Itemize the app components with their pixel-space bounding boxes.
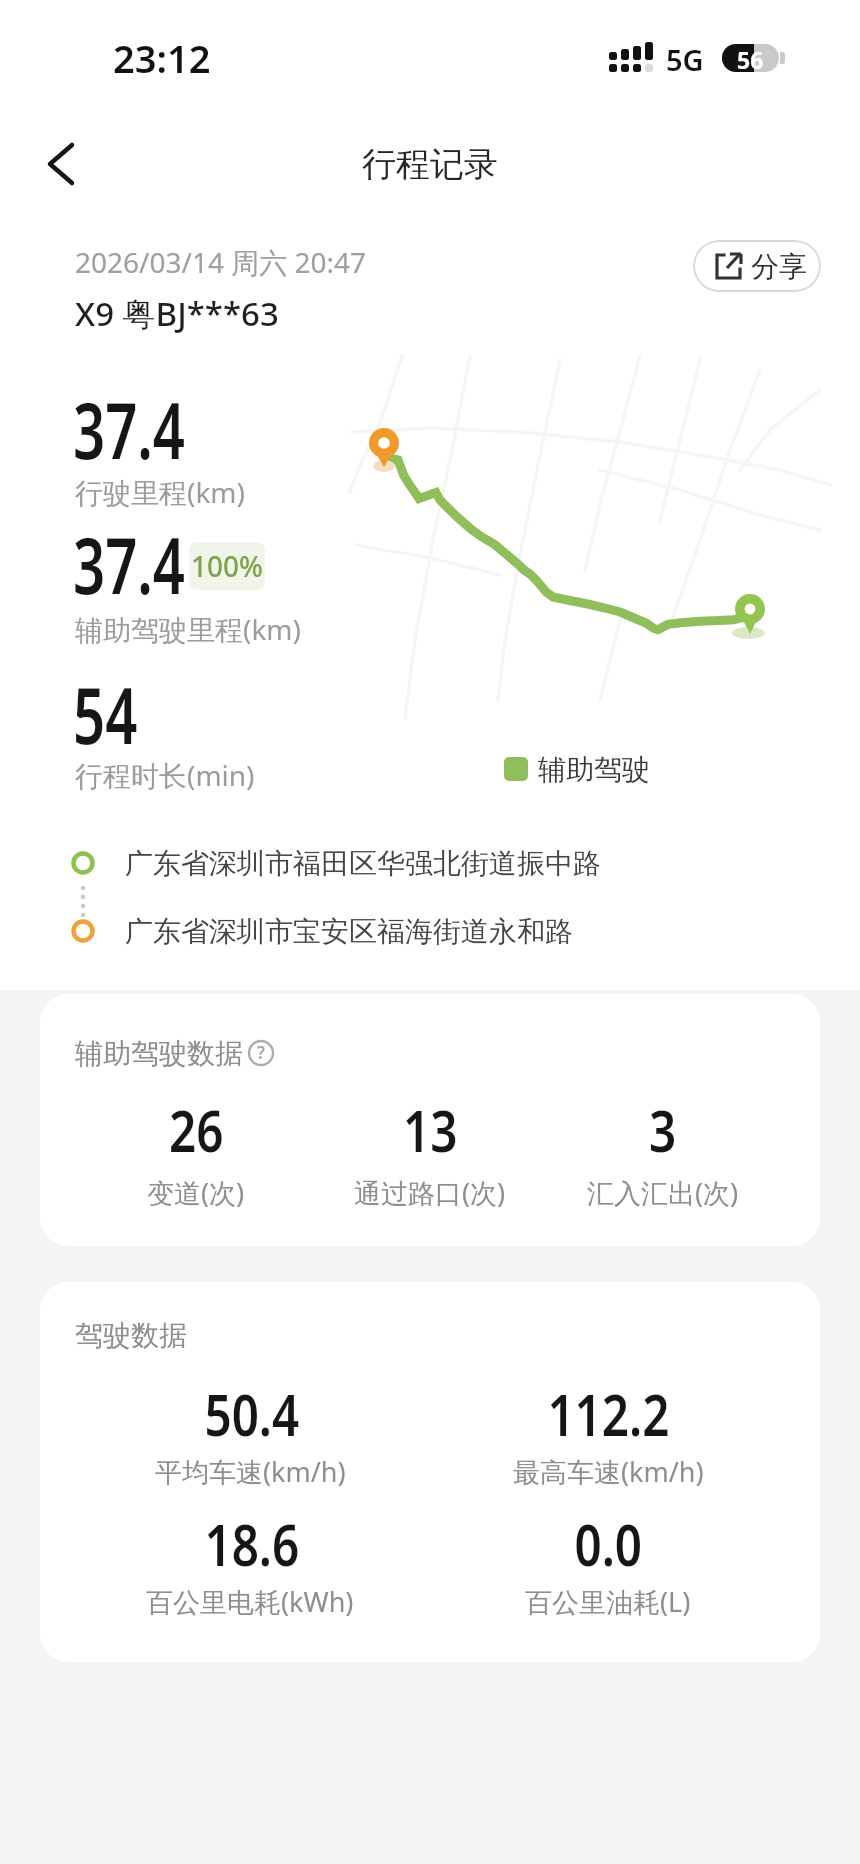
staticText: 汇入汇出(次) (587, 1174, 739, 1211)
staticText: 变道(次) (147, 1174, 245, 1211)
staticText: 分享 (751, 249, 807, 284)
staticText: 54 (73, 662, 138, 767)
staticText: 百公里油耗(L) (525, 1583, 691, 1620)
button[interactable] (35, 134, 87, 194)
staticText: 百公里电耗(kWh) (146, 1583, 354, 1620)
staticText: 平均车速(km/h) (155, 1453, 346, 1490)
staticText: 行程记录 (362, 143, 498, 186)
staticText: 37.4 (73, 377, 185, 482)
staticText: 辅助驾驶数据 (75, 1036, 243, 1071)
staticText: 23:12 (113, 32, 211, 84)
staticText: 0.0 (574, 1504, 643, 1583)
staticText: ? (257, 1041, 265, 1064)
staticText: 50.4 (204, 1374, 299, 1453)
staticText: 最高车速(km/h) (513, 1453, 704, 1490)
staticText: 驾驶数据 (75, 1318, 187, 1353)
staticText: 辅助驾驶里程(km) (75, 610, 301, 648)
staticText: 广东省深圳市福田区华强北街道振中路 (125, 846, 601, 881)
staticText: 37.4 (73, 512, 185, 617)
staticText: 100% (191, 547, 263, 585)
staticText: 2026/03/14 周六 20:47 (75, 243, 367, 281)
staticText: 13 (403, 1090, 458, 1169)
staticText: 26 (169, 1090, 224, 1169)
staticText: X9 粤BJ***63 (75, 291, 279, 336)
staticText: 3 (649, 1090, 677, 1169)
staticText: 辅助驾驶 (538, 752, 650, 787)
staticText: 行程时长(min) (75, 756, 255, 794)
staticText: 56 (737, 44, 764, 72)
staticText: 行驶里程(km) (75, 473, 245, 511)
staticText: 18.6 (204, 1504, 299, 1583)
staticText: 112.2 (547, 1374, 670, 1453)
staticText: 5G (666, 40, 704, 79)
button[interactable]: 分享 (693, 240, 821, 292)
staticText: 通过路口(次) (354, 1174, 506, 1211)
staticText: 广东省深圳市宝安区福海街道永和路 (125, 914, 573, 949)
